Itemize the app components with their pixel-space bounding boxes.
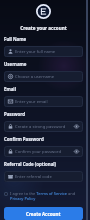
button[interactable]: Toggle password visibility <box>73 148 80 155</box>
button[interactable]: Toggle password visibility <box>73 123 80 130</box>
staticText: Create your account <box>4 25 83 31</box>
staticText: Choose a username <box>15 74 80 80</box>
staticText: Create a strong password <box>15 124 73 130</box>
button[interactable]: I agree to the Terms of Service and Priv… <box>4 191 83 201</box>
staticText: Create Account <box>26 211 61 217</box>
staticText: Username <box>4 61 27 67</box>
staticText: Referral Code (optional) <box>4 161 57 167</box>
button[interactable]: Enter referral code <box>4 171 83 182</box>
staticText: Enter your email <box>15 99 80 105</box>
staticText: Password <box>4 111 25 117</box>
staticText: I agree to the Terms of Service and Priv… <box>10 191 83 201</box>
button[interactable]: Choose a username <box>4 71 83 82</box>
button[interactable]: Enter your email <box>4 96 83 107</box>
staticText: Enter referral code <box>15 174 80 180</box>
button[interactable]: Create a strong password <box>4 121 83 132</box>
staticText: Full Name <box>4 36 27 42</box>
button[interactable]: Create Account <box>4 207 83 220</box>
staticText: Email <box>4 86 16 92</box>
staticText: Confirm Password <box>4 136 44 142</box>
staticText: Enter your full name <box>15 49 80 55</box>
button[interactable]: Enter your full name <box>4 46 83 57</box>
button[interactable]: Confirm your password <box>4 146 83 157</box>
staticText: Confirm your password <box>15 149 73 155</box>
